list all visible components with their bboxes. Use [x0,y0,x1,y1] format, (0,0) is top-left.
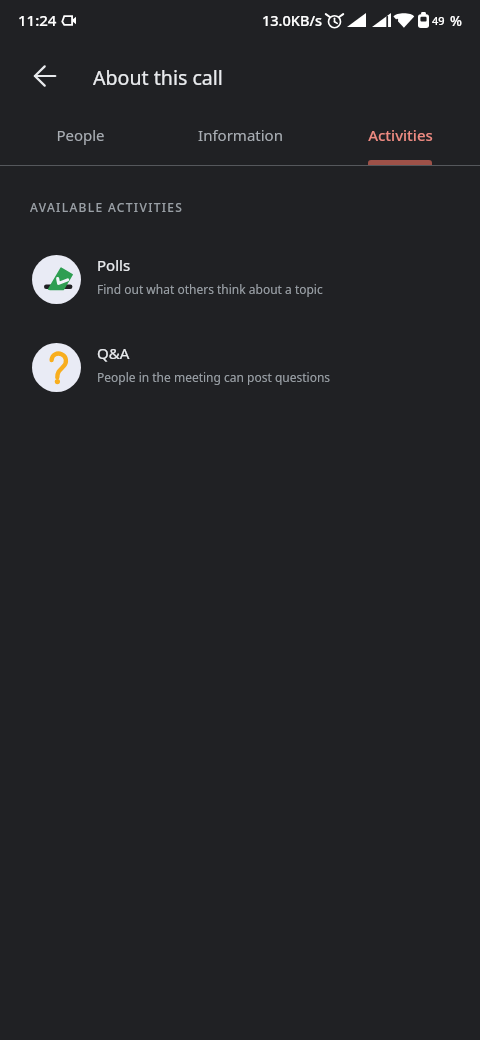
staticText: Activities [368,125,433,145]
staticText: Information [198,125,283,145]
staticText: 49 [432,13,445,28]
button[interactable]: Activities [320,112,480,166]
staticText: % [450,11,462,30]
staticText: 13.0KB/s [262,10,323,30]
button[interactable]: Information [160,112,320,166]
button[interactable]: Q&A [0,330,480,405]
staticText: 11:24 [18,10,57,30]
staticText: Find out what others think about a topic [97,281,323,297]
staticText: Polls [97,255,131,275]
staticText: AVAILABLE ACTIVITIES [30,199,184,215]
staticText: People in the meeting can post questions [97,369,331,385]
staticText: People [56,125,105,145]
staticText: About this call [93,64,223,91]
button[interactable]: Polls [0,242,480,317]
staticText: Q&A [97,343,130,363]
button[interactable]: Back [20,52,68,100]
button[interactable]: People [0,112,160,166]
